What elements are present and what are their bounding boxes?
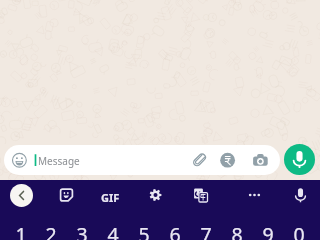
button[interactable]: Translate (189, 180, 212, 210)
staticText: 6 (169, 221, 181, 240)
button[interactable]: 5 (128, 221, 159, 240)
staticText: 8 (231, 221, 243, 240)
button[interactable]: GIF (99, 180, 122, 210)
staticText: 7 (200, 221, 212, 240)
staticText: GIF (101, 190, 120, 205)
button[interactable]: Message (4, 145, 280, 175)
button[interactable]: Settings (144, 180, 167, 210)
button[interactable]: Back (10, 180, 33, 210)
staticText: 2 (45, 221, 57, 240)
button[interactable]: 4 (97, 221, 128, 240)
staticText: Message (38, 154, 80, 168)
staticText: 5 (138, 221, 150, 240)
staticText: 4 (107, 221, 119, 240)
staticText: 1 (15, 221, 27, 240)
button[interactable]: Voice input (289, 180, 312, 210)
button[interactable]: 6 (159, 221, 190, 240)
button[interactable]: More options (243, 180, 266, 210)
button[interactable]: 7 (190, 221, 221, 240)
button[interactable]: 2 (36, 221, 66, 240)
button[interactable]: 8 (221, 221, 252, 240)
button[interactable]: 9 (252, 221, 283, 240)
button[interactable]: 1 (6, 221, 36, 240)
button[interactable]: Stickers (55, 180, 78, 210)
button[interactable]: 3 (66, 221, 97, 240)
button[interactable]: Voice message (284, 144, 315, 175)
staticText: 3 (76, 221, 88, 240)
staticText: 9 (262, 221, 274, 240)
staticText: 0 (293, 221, 305, 240)
button[interactable]: 0 (283, 221, 314, 240)
